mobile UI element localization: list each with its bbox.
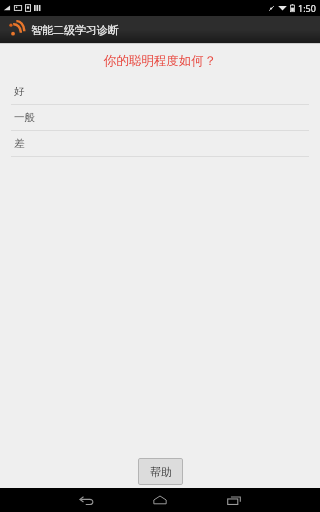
button[interactable]: 好 [0,79,320,105]
button[interactable]: Recents [216,488,252,512]
staticText: 一般 [14,111,35,124]
staticText: 好 [14,85,25,98]
button[interactable]: 差 [0,131,320,157]
button[interactable]: 一般 [0,105,320,131]
staticText: 智能二级学习诊断 [31,23,119,37]
button[interactable]: Back [68,488,104,512]
staticText: 帮助 [150,465,172,479]
staticText: 差 [14,137,25,150]
staticText: 1:50 [298,2,316,14]
button[interactable]: 帮助 [138,458,183,485]
button[interactable]: Home [142,488,178,512]
staticText: 你的聪明程度如何？ [0,53,320,69]
